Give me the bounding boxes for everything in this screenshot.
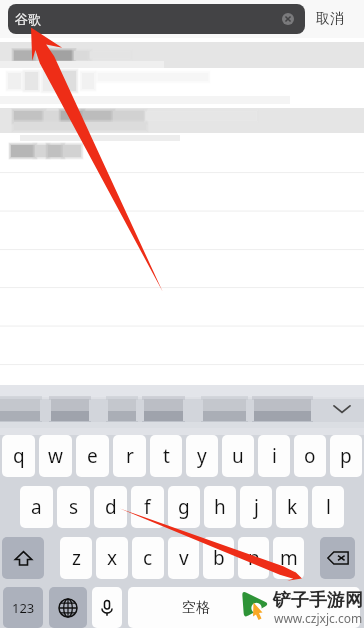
button[interactable]: 取消 (316, 10, 344, 28)
staticText: o (304, 443, 316, 469)
staticText: d (105, 494, 117, 520)
staticText: 取消 (316, 10, 344, 28)
button[interactable]: f (131, 486, 164, 528)
staticText: p (340, 443, 352, 469)
staticText: k (287, 494, 298, 520)
staticText: t (163, 443, 170, 469)
staticText: e (87, 443, 98, 469)
button[interactable]: 谷歌 (8, 4, 305, 34)
button[interactable] (0, 210, 364, 248)
button[interactable]: Clear text (282, 13, 294, 25)
button[interactable]: Backspace (320, 537, 355, 579)
button[interactable]: w (39, 435, 72, 477)
button[interactable]: a (20, 486, 53, 528)
button[interactable]: u (222, 435, 254, 477)
button[interactable]: i (258, 435, 290, 477)
staticText: h (214, 494, 226, 520)
button[interactable]: z (60, 537, 92, 579)
staticText: g (178, 494, 190, 520)
staticText: n (248, 545, 260, 571)
button[interactable]: e (76, 435, 109, 477)
staticText: q (13, 443, 25, 469)
button[interactable]: g (168, 486, 200, 528)
staticText: 谷歌 (15, 11, 41, 27)
button[interactable]: b (203, 537, 234, 579)
button[interactable]: t (150, 435, 182, 477)
button[interactable] (0, 172, 364, 210)
button[interactable] (0, 362, 364, 384)
staticText: r (126, 443, 134, 469)
staticText: z (72, 545, 81, 571)
button[interactable]: v (168, 537, 199, 579)
staticText: i (272, 443, 277, 469)
button[interactable] (0, 42, 364, 68)
staticText: l (326, 494, 331, 520)
button[interactable]: Shift (2, 537, 44, 579)
button[interactable]: d (94, 486, 127, 528)
staticText: s (69, 494, 79, 520)
button[interactable]: Hide candidates (332, 402, 352, 416)
staticText: j (254, 494, 259, 520)
button[interactable]: n (238, 537, 269, 579)
button[interactable] (0, 248, 364, 286)
button[interactable]: Voice input (92, 587, 122, 628)
button[interactable]: q (2, 435, 35, 477)
button[interactable]: 空格 (128, 587, 360, 628)
button[interactable]: k (276, 486, 308, 528)
button[interactable]: Change keyboard (49, 587, 87, 628)
button[interactable]: c (132, 537, 164, 579)
button[interactable]: r (113, 435, 146, 477)
staticText: 空格 (182, 599, 210, 617)
staticText: 123 (12, 599, 35, 617)
button[interactable] (0, 68, 364, 108)
button[interactable] (0, 133, 364, 172)
staticText: f (144, 494, 151, 520)
button[interactable]: p (330, 435, 362, 477)
staticText: y (197, 443, 207, 469)
staticText: u (232, 443, 244, 469)
staticText: www.czjxjc.com (274, 610, 363, 626)
button[interactable]: y (186, 435, 218, 477)
staticText: b (213, 545, 225, 571)
staticText: x (107, 545, 118, 571)
button[interactable]: 123 (3, 587, 43, 628)
button[interactable]: l (312, 486, 344, 528)
staticText: w (48, 443, 63, 469)
button[interactable]: o (294, 435, 326, 477)
button[interactable]: j (240, 486, 272, 528)
button[interactable]: m (273, 537, 304, 579)
staticText: c (143, 545, 153, 571)
staticText: 铲子手游网 (273, 589, 363, 612)
staticText: a (31, 494, 42, 520)
button[interactable]: h (204, 486, 236, 528)
staticText: v (179, 545, 189, 571)
button[interactable]: s (57, 486, 90, 528)
button[interactable]: x (96, 537, 128, 579)
button[interactable] (0, 108, 364, 133)
staticText: m (280, 545, 298, 571)
